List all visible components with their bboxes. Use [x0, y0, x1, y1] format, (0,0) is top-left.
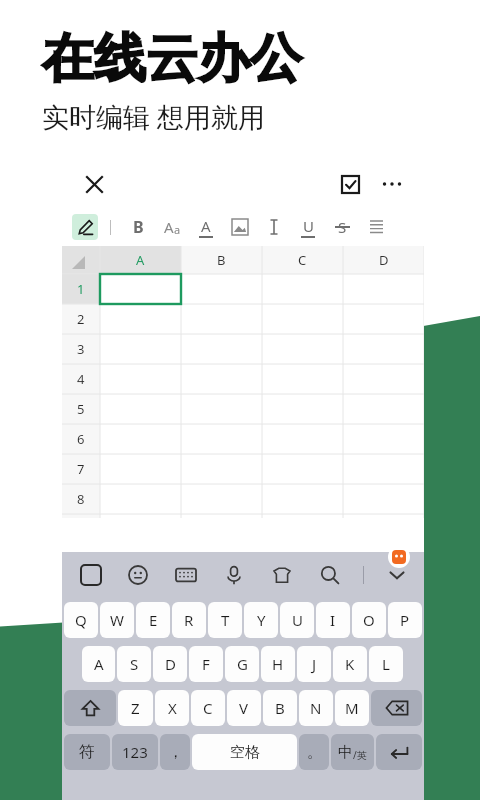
button[interactable]: Backspace — [371, 690, 422, 726]
button[interactable]: T — [208, 602, 242, 638]
button[interactable]: More options — [378, 170, 406, 198]
staticText: 实时编辑 想用就用 — [42, 98, 266, 135]
button[interactable]: Strikethrough — [325, 210, 359, 244]
staticText: 符 — [79, 742, 95, 762]
staticText: 1 — [77, 280, 85, 298]
button[interactable]: O — [352, 602, 386, 638]
button[interactable]: Text color — [189, 210, 223, 244]
button[interactable]: E — [136, 602, 170, 638]
staticText: 空格 — [230, 743, 260, 762]
staticText: T — [221, 610, 230, 630]
button[interactable]: A — [82, 646, 115, 682]
button[interactable]: S — [117, 646, 151, 682]
button[interactable]: G — [225, 646, 259, 682]
button[interactable]: H — [261, 646, 295, 682]
button[interactable]: Italic — [257, 210, 291, 244]
button[interactable]: V — [227, 690, 261, 726]
staticText: 5 — [77, 400, 85, 418]
staticText: U — [303, 216, 314, 236]
button[interactable]: I — [316, 602, 350, 638]
staticText: 6 — [77, 430, 85, 448]
staticText: W — [110, 610, 124, 630]
staticText: 。 — [307, 743, 322, 762]
staticText: 2 — [77, 310, 85, 328]
button[interactable]: Collapse keyboard — [382, 560, 412, 590]
staticText: B — [275, 698, 285, 718]
button[interactable]: Font size — [155, 210, 189, 244]
staticText: H — [272, 654, 284, 674]
button[interactable]: 符 — [64, 734, 110, 770]
staticText: J — [312, 654, 317, 674]
staticText: B — [217, 251, 226, 269]
staticText: V — [239, 698, 249, 718]
button[interactable]: P — [388, 602, 422, 638]
button[interactable]: F — [189, 646, 223, 682]
button[interactable]: Align — [359, 210, 393, 244]
button[interactable]: U — [280, 602, 314, 638]
staticText: /英 — [353, 748, 367, 762]
staticText: I — [330, 610, 336, 630]
button[interactable]: Q — [64, 602, 98, 638]
button[interactable]: J — [297, 646, 331, 682]
staticText: G — [237, 654, 248, 674]
button[interactable]: R — [172, 602, 206, 638]
button[interactable]: Sogou input — [76, 560, 106, 590]
staticText: Z — [131, 698, 140, 718]
staticText: 3 — [77, 340, 85, 358]
staticText: A — [136, 251, 145, 269]
staticText: 8 — [77, 490, 85, 508]
staticText: X — [168, 698, 177, 718]
button[interactable]: D — [153, 646, 187, 682]
staticText: Y — [257, 610, 266, 630]
button[interactable]: Underline — [291, 210, 325, 244]
button[interactable]: M — [335, 690, 369, 726]
button[interactable]: Z — [118, 690, 153, 726]
staticText: Q — [75, 610, 87, 630]
button[interactable]: Y — [244, 602, 278, 638]
staticText: S — [130, 654, 139, 674]
button[interactable]: B — [263, 690, 297, 726]
staticText: A — [201, 216, 211, 236]
button[interactable]: Shift — [64, 690, 116, 726]
button[interactable]: Emoji — [123, 560, 153, 590]
staticText: 4 — [77, 370, 85, 388]
button[interactable]: Skins — [267, 560, 297, 590]
button[interactable]: N — [299, 690, 333, 726]
staticText: E — [149, 610, 158, 630]
button[interactable]: 空格 — [192, 734, 297, 770]
button[interactable]: Assistant — [388, 546, 410, 568]
button[interactable]: Edit — [72, 214, 98, 240]
staticText: P — [400, 610, 410, 630]
staticText: 中 — [338, 743, 353, 762]
button[interactable]: K — [333, 646, 367, 682]
button[interactable]: Bold — [121, 210, 155, 244]
button[interactable]: Search — [315, 560, 345, 590]
staticText: a — [174, 222, 181, 237]
button[interactable]: 中 — [331, 734, 374, 770]
staticText: F — [202, 654, 210, 674]
staticText: A — [94, 654, 104, 674]
staticText: U — [292, 610, 303, 630]
staticText: 7 — [77, 460, 85, 478]
staticText: D — [165, 654, 176, 674]
button[interactable]: L — [369, 646, 403, 682]
button[interactable]: 。 — [299, 734, 329, 770]
button[interactable]: Keyboard layout — [171, 560, 201, 590]
button[interactable]: Done — [336, 170, 364, 198]
staticText: 123 — [122, 742, 148, 762]
button[interactable]: Voice input — [219, 560, 249, 590]
staticText: S — [338, 217, 347, 237]
button[interactable]: C — [191, 690, 225, 726]
button[interactable]: 123 — [112, 734, 158, 770]
button[interactable]: ， — [160, 734, 190, 770]
button[interactable]: Enter — [376, 734, 422, 770]
button[interactable]: X — [155, 690, 189, 726]
button[interactable]: Close — [80, 170, 108, 198]
staticText: M — [345, 698, 359, 718]
staticText: B — [133, 216, 144, 238]
staticText: D — [379, 251, 389, 269]
button[interactable]: W — [100, 602, 134, 638]
staticText: N — [310, 698, 322, 718]
button[interactable]: Insert image — [223, 210, 257, 244]
staticText: C — [203, 698, 213, 718]
